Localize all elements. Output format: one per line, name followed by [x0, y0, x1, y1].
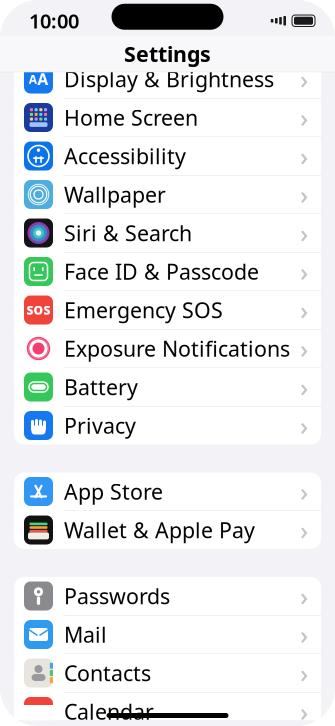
staticText: › — [300, 178, 308, 211]
staticText: › — [300, 216, 308, 250]
button[interactable]: SOS — [14, 291, 321, 329]
staticText: Siri & Search — [64, 219, 192, 247]
staticText: Calendar — [64, 697, 154, 726]
button[interactable]: App Store — [14, 472, 321, 511]
button[interactable]: Accessibility — [14, 137, 321, 175]
staticText: Accessibility — [64, 142, 186, 170]
staticText: 10:00 — [29, 7, 79, 34]
staticText: Face ID & Passcode — [64, 257, 259, 286]
staticText: Emergency SOS — [64, 296, 223, 324]
staticText: › — [300, 475, 308, 508]
staticText: Exposure Notifications — [64, 334, 290, 363]
staticText: › — [300, 513, 308, 547]
button[interactable]: Wallet & Apple Pay — [14, 511, 321, 549]
staticText: › — [300, 370, 308, 404]
staticText: › — [300, 579, 308, 613]
staticText: › — [300, 101, 308, 134]
staticText: › — [300, 293, 308, 327]
staticText: Battery — [64, 373, 138, 401]
staticText: Privacy — [64, 411, 136, 440]
button[interactable]: Passwords — [14, 577, 321, 615]
staticText: Wallet & Apple Pay — [64, 516, 255, 544]
staticText: › — [300, 656, 308, 690]
staticText: › — [300, 618, 308, 651]
button[interactable]: Mail — [14, 615, 321, 654]
button[interactable]: Face ID & Passcode — [14, 252, 321, 291]
staticText: App Store — [64, 477, 163, 506]
button[interactable]: Contacts — [14, 654, 321, 692]
staticText: › — [300, 255, 308, 288]
staticText: › — [300, 409, 308, 442]
staticText: Mail — [64, 620, 107, 649]
staticText: › — [300, 62, 308, 96]
button[interactable]: Privacy — [14, 406, 321, 444]
staticText: › — [300, 695, 308, 726]
staticText: Home Screen — [64, 103, 198, 132]
button[interactable]: Siri & Search — [14, 214, 321, 252]
staticText: Passwords — [64, 582, 170, 610]
staticText: SOS — [26, 302, 50, 318]
button[interactable]: Wallpaper — [14, 175, 321, 214]
staticText: A — [29, 71, 37, 87]
button[interactable]: Exposure Notifications — [14, 329, 321, 368]
staticText: › — [300, 139, 308, 173]
staticText: Contacts — [64, 659, 151, 687]
button[interactable]: Home Screen — [14, 98, 321, 137]
staticText: › — [300, 332, 308, 365]
button[interactable]: A — [14, 60, 321, 98]
staticText: Settings — [124, 40, 211, 68]
staticText: Display & Brightness — [64, 65, 274, 93]
button[interactable]: Battery — [14, 368, 321, 406]
button[interactable]: Calendar — [14, 692, 321, 726]
staticText: A — [37, 68, 48, 90]
staticText: Wallpaper — [64, 180, 166, 209]
